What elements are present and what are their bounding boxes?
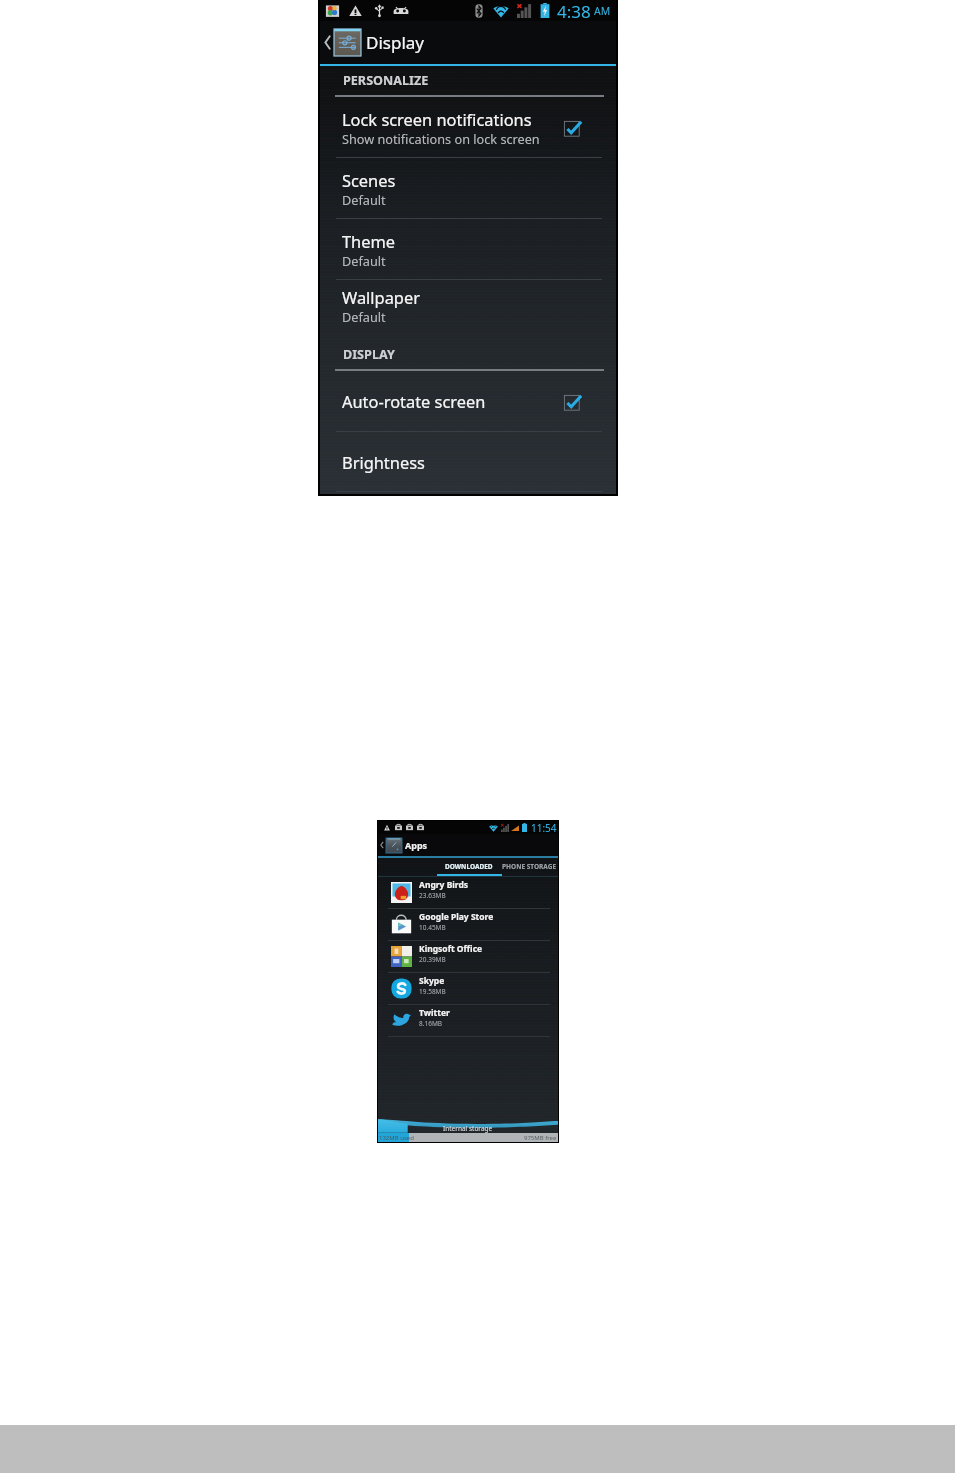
button[interactable]: Toggle Lock screen notifications bbox=[564, 117, 584, 137]
staticText: 23.63MB bbox=[419, 891, 446, 900]
button[interactable]: Skype bbox=[378, 973, 558, 1004]
staticText: Default bbox=[342, 191, 386, 208]
staticText: Theme bbox=[342, 230, 396, 252]
other: Navigate up bbox=[380, 841, 384, 849]
button[interactable]: Lock screen notifications bbox=[320, 97, 616, 157]
button[interactable]: Auto-rotate screen bbox=[320, 371, 616, 431]
staticText: Angry Birds bbox=[419, 879, 469, 891]
button[interactable]: Theme bbox=[320, 219, 616, 279]
staticText: 132MB used bbox=[379, 1134, 414, 1142]
button[interactable]: Kingsoft Office bbox=[378, 941, 558, 972]
other: Navigate up bbox=[324, 35, 331, 50]
staticText: AM bbox=[594, 4, 611, 18]
staticText: Internal storage bbox=[443, 1124, 493, 1133]
staticText: Twitter bbox=[419, 1007, 450, 1019]
staticText: 19.58MB bbox=[419, 987, 446, 996]
staticText: 10.45MB bbox=[419, 923, 446, 932]
staticText: Skype bbox=[419, 975, 445, 987]
staticText: 11:54 bbox=[531, 821, 557, 834]
button[interactable]: DOWNLOADED bbox=[437, 858, 501, 874]
staticText: Default bbox=[342, 252, 386, 269]
button[interactable]: Navigate up bbox=[378, 834, 558, 856]
button[interactable]: Wallpaper bbox=[320, 280, 616, 337]
button[interactable]: Scenes bbox=[320, 158, 616, 218]
button[interactable]: Google Play Store bbox=[378, 909, 558, 940]
staticText: Show notifications on lock screen bbox=[342, 130, 540, 147]
staticText: 20.39MB bbox=[419, 955, 446, 964]
staticText: DISPLAY bbox=[343, 346, 395, 363]
staticText: Default bbox=[342, 308, 386, 325]
button[interactable]: Toggle Auto-rotate screen bbox=[564, 391, 584, 411]
button[interactable]: Brightness bbox=[320, 432, 616, 491]
staticText: Display bbox=[366, 31, 424, 54]
staticText: Scenes bbox=[342, 169, 396, 191]
button[interactable]: Twitter bbox=[378, 1005, 558, 1036]
staticText: Wallpaper bbox=[342, 286, 420, 308]
button[interactable]: PHONE STORAGE bbox=[501, 858, 558, 874]
button[interactable]: Angry Birds bbox=[378, 877, 558, 908]
staticText: 975MB free bbox=[524, 1134, 557, 1142]
staticText: Brightness bbox=[342, 451, 425, 473]
button[interactable]: Navigate up bbox=[320, 21, 616, 64]
staticText: DOWNLOADED bbox=[445, 862, 493, 871]
staticText: Lock screen notifications bbox=[342, 108, 532, 130]
staticText: Kingsoft Office bbox=[419, 943, 483, 955]
staticText: 4:38 bbox=[557, 0, 591, 21]
staticText: PHONE STORAGE bbox=[502, 862, 557, 871]
staticText: Auto-rotate screen bbox=[342, 390, 486, 412]
staticText: Google Play Store bbox=[419, 911, 494, 923]
staticText: PERSONALIZE bbox=[343, 72, 429, 89]
staticText: 8.16MB bbox=[419, 1019, 443, 1028]
staticText: Apps bbox=[405, 839, 428, 851]
